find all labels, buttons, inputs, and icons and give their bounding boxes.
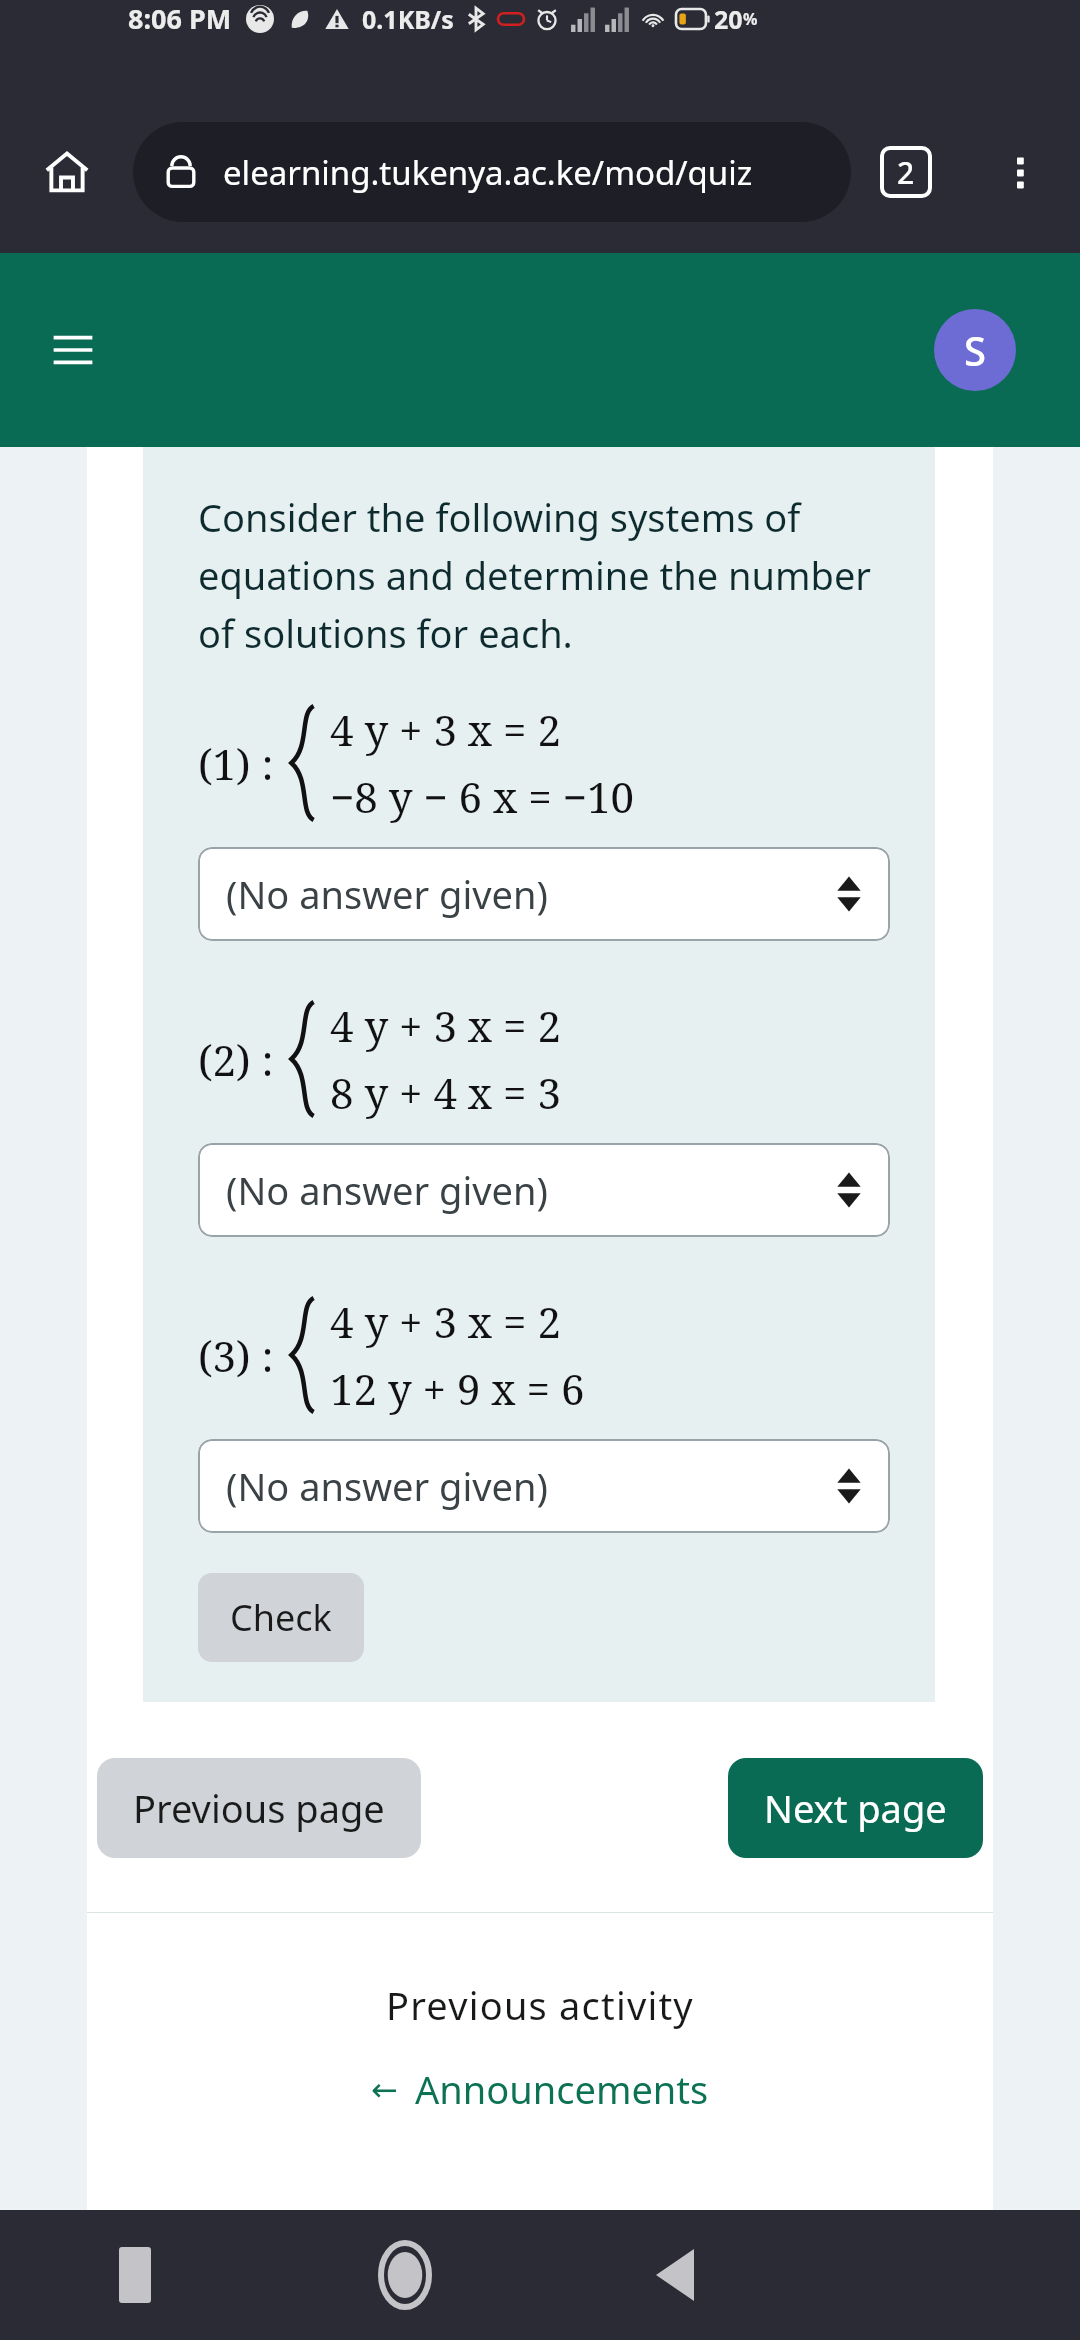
button[interactable]: (No answer given) (198, 1439, 890, 1533)
button[interactable]: Back (540, 2210, 810, 2340)
staticText: 0.1KB/s (362, 2, 454, 36)
staticText: Consider the following systems of equati… (198, 491, 890, 659)
staticText: % (743, 8, 758, 30)
staticText: Check (230, 1593, 332, 1642)
staticText: Previous activity (386, 1979, 694, 2031)
staticText: S (964, 323, 986, 377)
staticText: 20 (714, 2, 743, 36)
button[interactable]: Check (198, 1573, 364, 1662)
staticText: 4 y + 3 x = 2 (330, 701, 561, 758)
button[interactable]: ← (371, 2063, 709, 2115)
staticText: Previous page (133, 1782, 385, 1834)
staticText: −8 y − 6 x = −10 (330, 768, 634, 825)
staticText: (1) : (198, 735, 274, 792)
button[interactable]: Home (0, 90, 133, 253)
staticText: (No answer given) (226, 1460, 548, 1512)
button[interactable]: (No answer given) (198, 847, 890, 941)
staticText: 4 y + 3 x = 2 (330, 1293, 561, 1350)
staticText: (3) : (198, 1327, 274, 1384)
button[interactable]: Profile (934, 309, 1016, 391)
button[interactable]: Tabs (851, 90, 961, 253)
staticText: Next page (764, 1782, 947, 1834)
button[interactable]: (No answer given) (198, 1143, 890, 1237)
staticText: ← (371, 2067, 415, 2111)
staticText: 12 y + 9 x = 6 (330, 1360, 585, 1417)
staticText: 2 (897, 152, 915, 193)
staticText: (No answer given) (226, 1164, 548, 1216)
button[interactable]: Previous page (97, 1758, 421, 1858)
staticText: elearning.tukenya.ac.ke/mod/quiz (223, 150, 753, 195)
button[interactable]: Next page (728, 1758, 983, 1858)
button[interactable]: Recent apps (0, 2210, 270, 2340)
staticText: Announcements (415, 2063, 709, 2115)
staticText: 8:06 PM (128, 0, 232, 37)
button[interactable]: More options (961, 90, 1080, 253)
button[interactable]: Home (270, 2210, 540, 2340)
button[interactable]: elearning.tukenya.ac.ke/mod/quiz (133, 122, 851, 222)
staticText: (2) : (198, 1031, 274, 1088)
staticText: 4 y + 3 x = 2 (330, 997, 561, 1054)
staticText: (No answer given) (226, 868, 548, 920)
staticText: 8 y + 4 x = 3 (330, 1064, 561, 1121)
button[interactable]: Menu (38, 315, 108, 385)
